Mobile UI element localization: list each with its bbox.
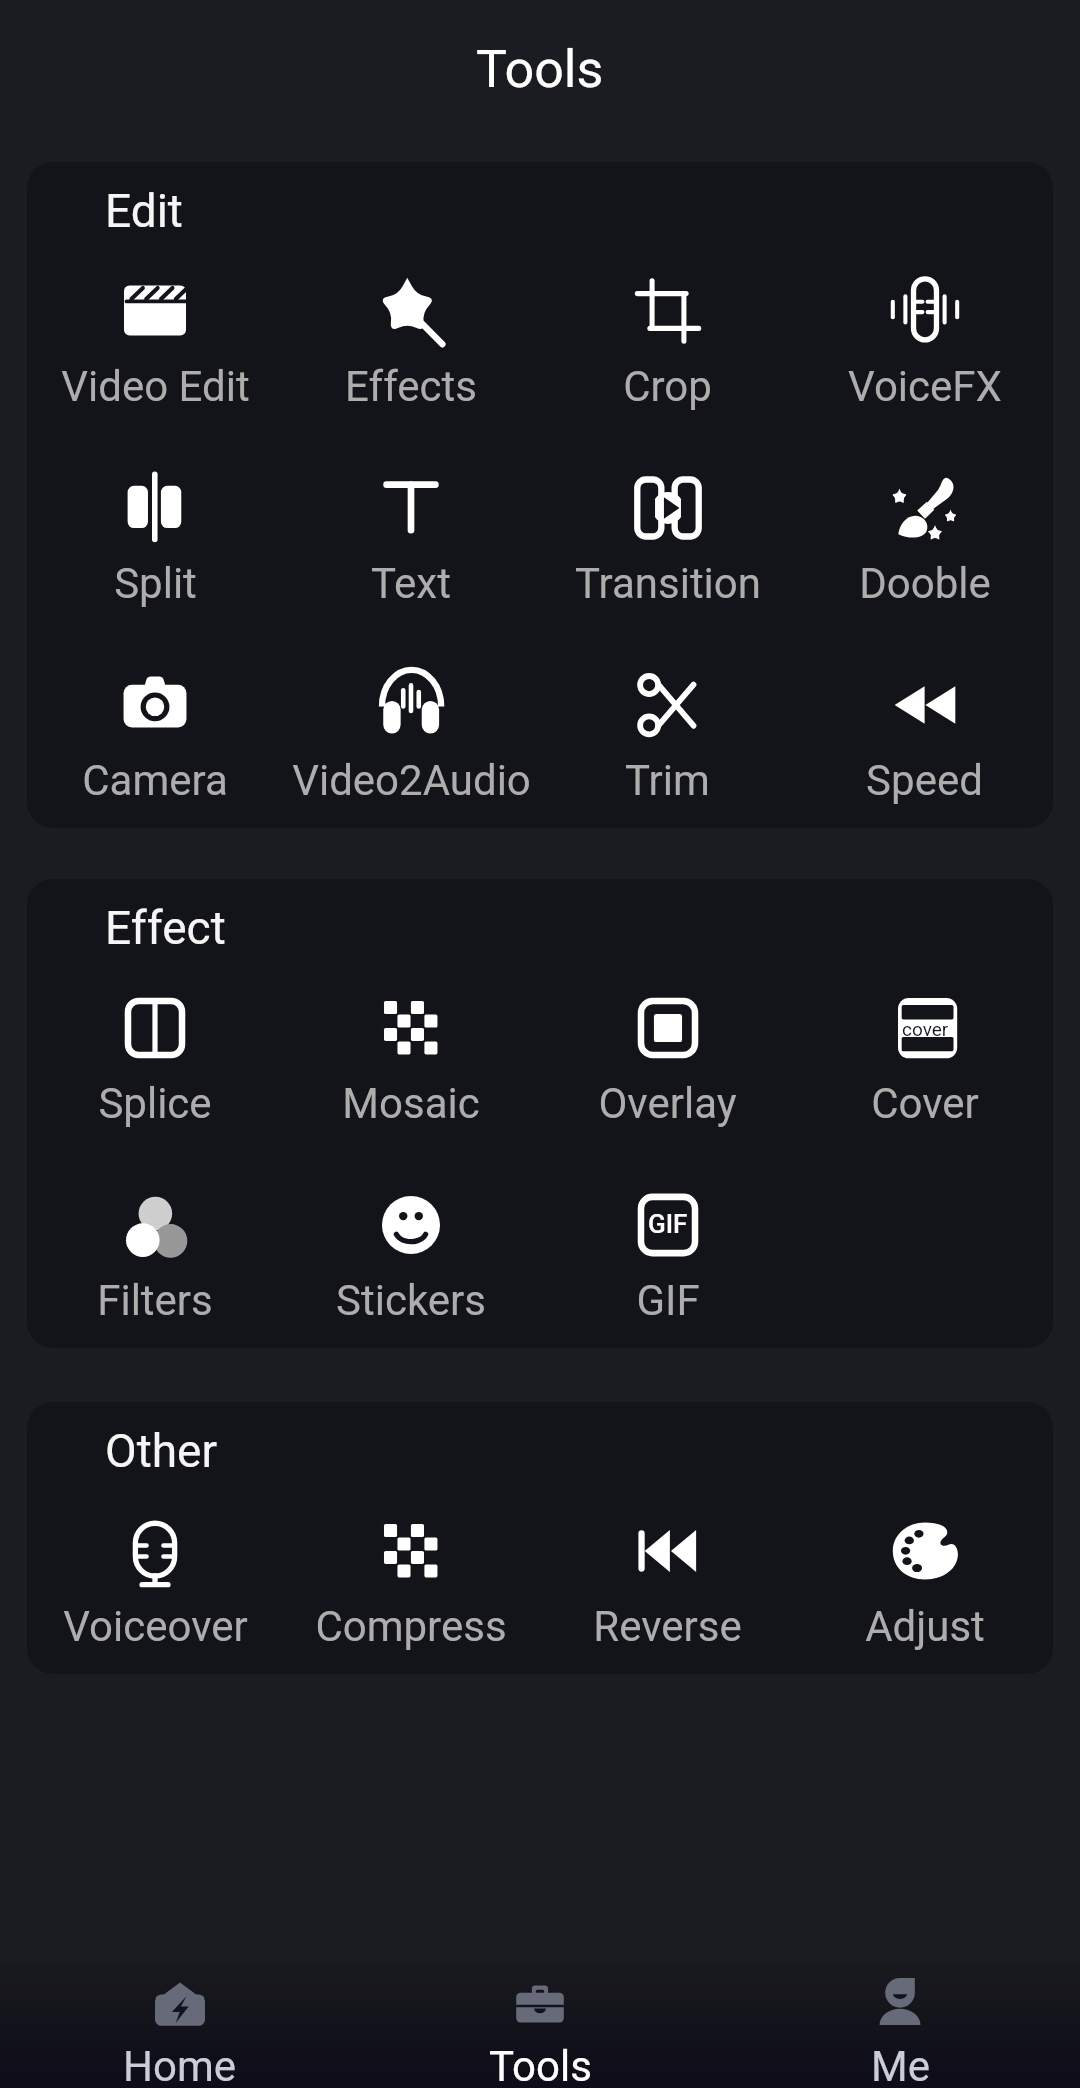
- staticText: Tools: [476, 39, 604, 100]
- staticText: Text: [371, 559, 451, 608]
- staticText: Voiceover: [63, 1602, 248, 1651]
- button[interactable]: Video2Audio: [283, 644, 539, 828]
- staticText: Compress: [315, 1602, 507, 1651]
- staticText: Video Edit: [61, 362, 250, 411]
- staticText: Tools: [489, 2042, 592, 2088]
- staticText: Cover: [871, 1079, 979, 1128]
- staticText: Overlay: [598, 1079, 737, 1128]
- staticText: Reverse: [593, 1602, 742, 1651]
- button[interactable]: VoiceFX: [796, 250, 1053, 447]
- staticText: Effects: [345, 362, 477, 411]
- staticText: Dooble: [859, 559, 991, 608]
- button[interactable]: Trim: [539, 644, 796, 828]
- button[interactable]: Adjust: [796, 1490, 1053, 1674]
- button[interactable]: Crop: [539, 250, 796, 447]
- button[interactable]: Splice: [27, 967, 283, 1164]
- staticText: Adjust: [865, 1602, 985, 1651]
- staticText: Splice: [98, 1079, 212, 1128]
- button[interactable]: Filters: [27, 1164, 283, 1348]
- button[interactable]: Mosaic: [283, 967, 539, 1164]
- staticText: VoiceFX: [848, 362, 1002, 411]
- staticText: Effect: [105, 901, 226, 955]
- button[interactable]: GIF: [539, 1164, 796, 1348]
- staticText: Crop: [623, 362, 712, 411]
- staticText: Video2Audio: [292, 756, 531, 805]
- button[interactable]: Video Edit: [27, 250, 283, 447]
- button[interactable]: Effects: [283, 250, 539, 447]
- button[interactable]: Stickers: [283, 1164, 539, 1348]
- staticText: Edit: [105, 184, 183, 238]
- staticText: Filters: [97, 1276, 213, 1325]
- button[interactable]: Voiceover: [27, 1490, 283, 1674]
- staticText: Speed: [866, 756, 983, 805]
- button[interactable]: cover: [796, 967, 1053, 1164]
- staticText: Other: [105, 1424, 218, 1478]
- staticText: GIF: [636, 1276, 700, 1325]
- staticText: Split: [114, 559, 197, 608]
- button[interactable]: Dooble: [796, 447, 1053, 644]
- staticText: Trim: [625, 756, 710, 805]
- staticText: Mosaic: [342, 1079, 480, 1128]
- button[interactable]: Transition: [539, 447, 796, 644]
- button[interactable]: Home: [0, 1962, 360, 2088]
- button[interactable]: Overlay: [539, 967, 796, 1164]
- button[interactable]: Tools: [360, 1962, 720, 2088]
- staticText: GIF: [648, 1209, 688, 1239]
- button[interactable]: Speed: [796, 644, 1053, 828]
- staticText: Home: [123, 2042, 237, 2088]
- button[interactable]: Split: [27, 447, 283, 644]
- staticText: Me: [871, 2042, 930, 2088]
- staticText: Stickers: [336, 1276, 486, 1325]
- button[interactable]: Camera: [27, 644, 283, 828]
- staticText: Transition: [575, 559, 761, 608]
- button[interactable]: Me: [720, 1962, 1080, 2088]
- staticText: Camera: [82, 756, 228, 805]
- button[interactable]: Text: [283, 447, 539, 644]
- button[interactable]: Reverse: [539, 1490, 796, 1674]
- button[interactable]: Compress: [283, 1490, 539, 1674]
- staticText: cover: [902, 1018, 949, 1040]
